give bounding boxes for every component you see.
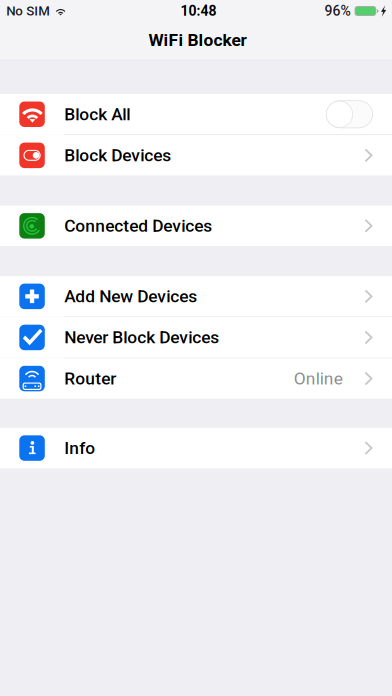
staticText: Online [294, 368, 343, 389]
staticText: Router [64, 368, 116, 389]
button[interactable]: Connected Devices [0, 206, 392, 246]
staticText: Info [64, 438, 95, 458]
button[interactable]: Block Devices [0, 135, 392, 176]
staticText: WiFi Blocker [148, 30, 246, 50]
staticText: Add New Devices [64, 286, 197, 306]
button[interactable]: Add New Devices [0, 276, 392, 317]
staticText: Never Block Devices [64, 327, 219, 348]
button[interactable]: Info [0, 428, 392, 468]
button[interactable]: Never Block Devices [0, 317, 392, 358]
staticText: 96% [325, 3, 351, 19]
staticText: 10:48 [180, 3, 216, 19]
staticText: Block Devices [64, 145, 171, 165]
button[interactable]: Block All [0, 94, 392, 134]
button[interactable]: Router [0, 358, 392, 399]
staticText: Connected Devices [64, 216, 212, 236]
staticText: Block All [64, 104, 130, 124]
staticText: No SIM [6, 3, 50, 19]
